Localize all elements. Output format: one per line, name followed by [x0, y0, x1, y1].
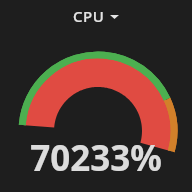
staticText: CPU: [73, 6, 105, 26]
other: Select metric: [110, 13, 119, 20]
button[interactable]: CPU usage gauge 70233 percent: [0, 0, 192, 192]
staticText: 70233%: [0, 134, 192, 182]
button[interactable]: CPU: [67, 4, 125, 28]
